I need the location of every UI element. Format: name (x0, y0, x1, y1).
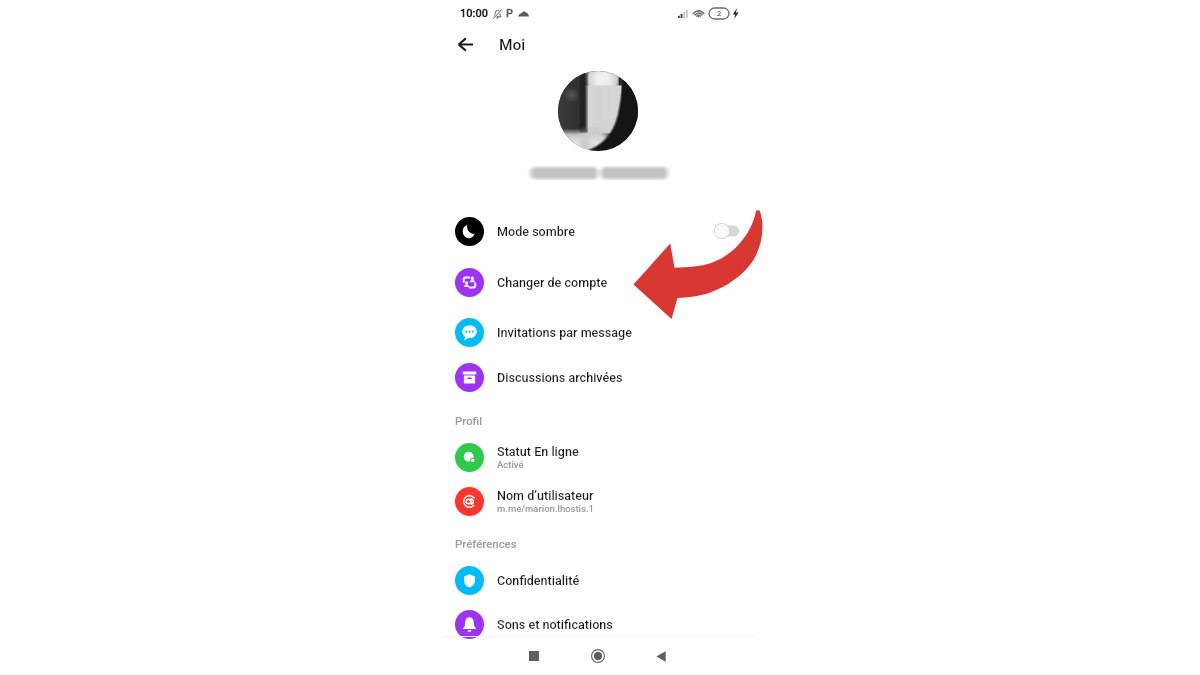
button[interactable]: Mode sombre (443, 209, 755, 253)
staticText: Profil (455, 414, 483, 427)
button[interactable]: Home (581, 639, 615, 673)
button[interactable]: Back (644, 639, 678, 673)
button[interactable]: Sons et notifications (443, 602, 755, 646)
staticText: Changer de compte (497, 275, 608, 290)
staticText: Activé (497, 459, 524, 470)
button[interactable]: Statut En ligne (443, 435, 755, 479)
button[interactable]: Changer de compte (443, 260, 755, 304)
staticText: Mode sombre (497, 224, 575, 239)
button[interactable]: Recent apps (517, 639, 551, 673)
button[interactable]: Profile photo (558, 71, 638, 151)
button[interactable]: Discussions archivées (443, 355, 755, 399)
staticText: 10:00 (460, 7, 488, 20)
staticText: 2 (717, 9, 722, 18)
button[interactable]: Back (448, 27, 482, 61)
staticText: Invitations par message (497, 325, 632, 340)
staticText: Nom d’utilisateur (497, 488, 594, 503)
button[interactable]: Invitations par message (443, 310, 755, 354)
staticText: Sons et notifications (497, 617, 613, 632)
staticText: Préférences (455, 537, 517, 550)
button[interactable]: Confidentialité (443, 558, 755, 602)
staticText: Confidentialité (497, 573, 580, 588)
staticText: Statut En ligne (497, 444, 579, 459)
staticText: P (506, 7, 514, 20)
staticText: Moi (499, 36, 526, 54)
staticText: m.me/marion.lhostis.1 (497, 503, 594, 514)
staticText: Discussions archivées (497, 370, 623, 385)
button[interactable]: Dark mode toggle (713, 222, 742, 240)
button[interactable]: Nom d’utilisateur (443, 479, 755, 523)
